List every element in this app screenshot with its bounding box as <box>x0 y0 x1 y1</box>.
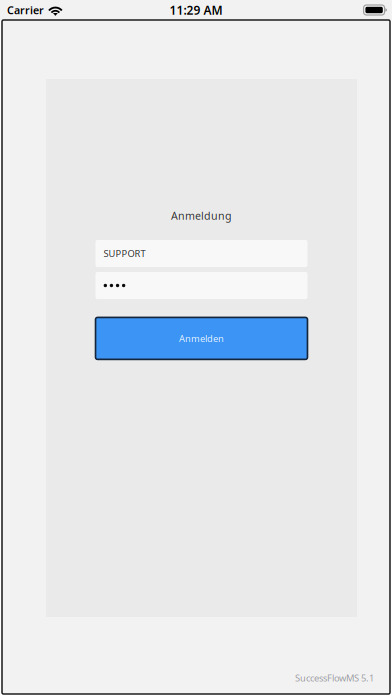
staticText: Carrier <box>7 3 44 17</box>
staticText: SUPPORT <box>103 247 145 260</box>
button[interactable]: Anmelden <box>94 316 309 361</box>
staticText: Anmeldung <box>171 208 232 223</box>
staticText: Anmelden <box>179 332 224 345</box>
staticText: 11:29 AM <box>169 2 222 18</box>
staticText: SuccessFlowMS 5.1 <box>295 672 374 684</box>
